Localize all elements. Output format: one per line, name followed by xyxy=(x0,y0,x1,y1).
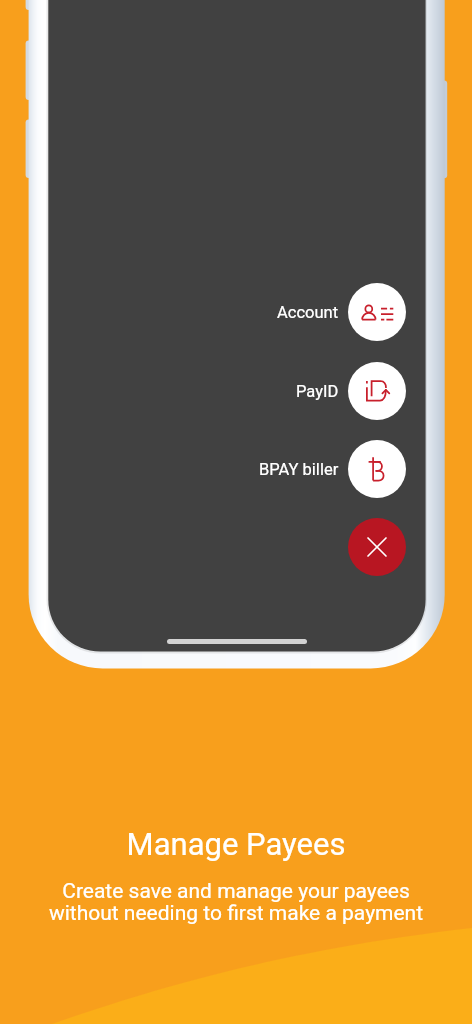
button[interactable]: Close menu xyxy=(348,518,406,576)
staticText: Create save and manage your payees witho… xyxy=(0,879,472,926)
button[interactable]: Account xyxy=(150,283,406,341)
staticText: Manage Payees xyxy=(0,826,472,862)
staticText: BPAY biller xyxy=(259,460,339,479)
button[interactable]: BPAY biller xyxy=(150,440,406,498)
staticText: Account xyxy=(277,303,339,322)
button[interactable]: PayID xyxy=(150,362,406,420)
staticText: PayID xyxy=(296,382,339,401)
